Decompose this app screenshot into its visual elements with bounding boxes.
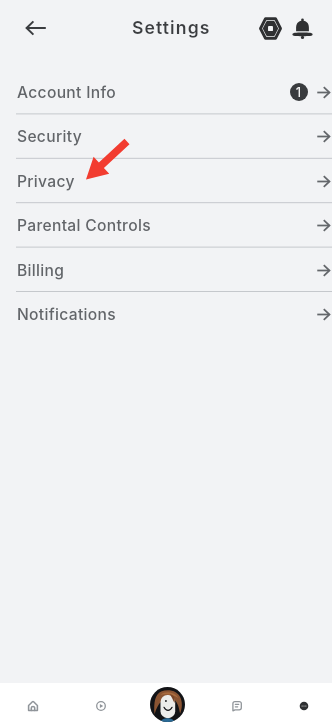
button[interactable]: Home [16, 689, 50, 723]
button[interactable]: Account Info [0, 70, 332, 114]
staticText: Security [17, 127, 82, 146]
staticText: Parental Controls [17, 216, 151, 235]
button[interactable]: Privacy [0, 159, 332, 203]
button[interactable]: Chat [220, 689, 254, 723]
button[interactable]: More [287, 689, 321, 723]
button[interactable]: Avatar [149, 686, 185, 722]
button[interactable]: Discover [84, 689, 118, 723]
staticText: Billing [17, 261, 65, 280]
staticText: Account Info [17, 83, 116, 102]
staticText: Notifications [17, 305, 116, 324]
button[interactable]: Billing [0, 248, 332, 292]
staticText: Settings [132, 17, 211, 38]
button[interactable]: Security [0, 114, 332, 158]
staticText: 1 [296, 85, 302, 100]
button[interactable]: Notifications [0, 292, 332, 336]
staticText: Privacy [17, 172, 75, 191]
button[interactable]: Parental Controls [0, 203, 332, 247]
button[interactable]: Notifications [284, 10, 320, 46]
button[interactable]: Robux [252, 10, 288, 46]
button[interactable]: Back [16, 8, 56, 48]
